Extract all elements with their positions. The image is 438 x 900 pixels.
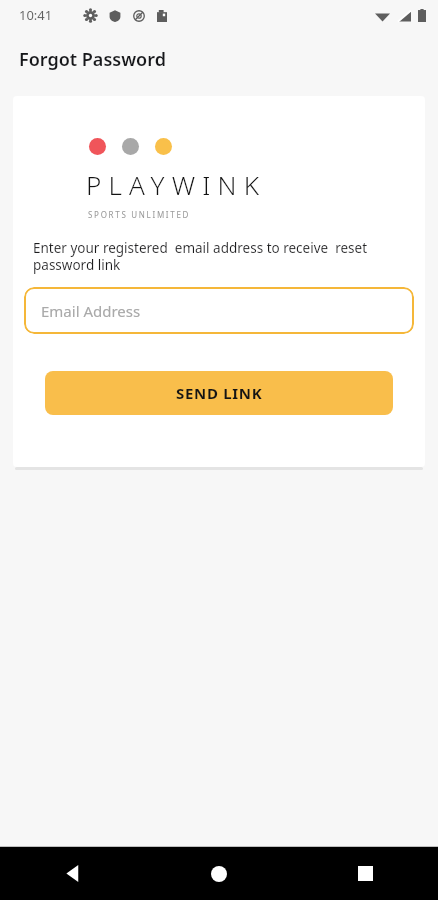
- staticText: SEND LINK: [176, 383, 263, 403]
- staticText: 10:41: [19, 6, 53, 24]
- button[interactable]: Back: [0, 847, 146, 900]
- button[interactable]: Email Address: [24, 287, 414, 334]
- staticText: Email Address: [41, 301, 141, 321]
- staticText: Forgot Password: [19, 47, 166, 72]
- button[interactable]: Recent apps: [292, 847, 438, 900]
- staticText: SPORTS UNLIMITED: [88, 209, 191, 220]
- button[interactable]: SEND LINK: [45, 371, 393, 415]
- button[interactable]: Home: [146, 847, 292, 900]
- staticText: Enter your registered email address to r…: [33, 239, 411, 274]
- staticText: PLAYWINK: [86, 167, 267, 202]
